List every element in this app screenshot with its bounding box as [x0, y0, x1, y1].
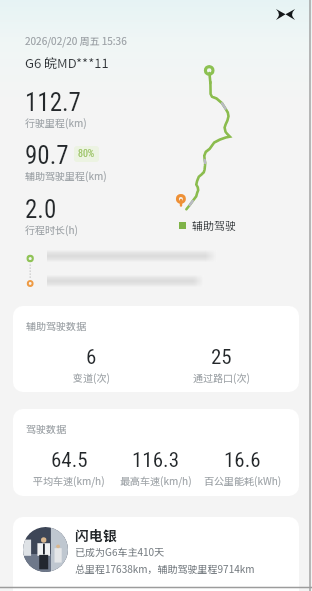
staticText: G6 皖MD***11	[25, 53, 109, 72]
staticText: 行程时长(h)	[25, 222, 78, 236]
staticText: 变道(次)	[73, 370, 110, 384]
staticText: 辅助驾驶	[192, 217, 236, 233]
button[interactable]: 辅助驾驶数据	[13, 306, 299, 392]
button[interactable]: 闪电银	[13, 517, 299, 591]
staticText: 112.7	[25, 88, 81, 117]
staticText: 行驶里程(km)	[25, 115, 87, 129]
staticText: 辅助驾驶里程(km)	[25, 168, 107, 182]
staticText: 已成为G6车主410天	[75, 544, 165, 558]
staticText: 2.0	[25, 195, 57, 224]
staticText: 驾驶数据	[26, 421, 66, 435]
staticText: 2026/02/20 周五 15:36	[25, 33, 127, 47]
staticText: 6	[86, 345, 97, 370]
staticText: 116.3	[132, 448, 180, 473]
staticText: 最高车速(km/h)	[120, 473, 192, 487]
staticText: 通过路口(次)	[193, 370, 250, 384]
staticText: 25	[211, 345, 232, 370]
staticText: 闪电银	[75, 525, 117, 545]
staticText: 平均车速(km/h)	[33, 473, 105, 487]
staticText: 80%	[78, 148, 95, 160]
staticText: 90.7	[25, 141, 69, 170]
staticText: 16.6	[224, 448, 261, 473]
button[interactable]: 驾驶数据	[13, 409, 299, 496]
button[interactable]: Close	[272, 0, 299, 27]
staticText: 百公里能耗(kWh)	[204, 473, 282, 487]
staticText: 总里程17638km，辅助驾驶里程9714km	[75, 561, 255, 575]
staticText: 64.5	[51, 448, 88, 473]
staticText: 辅助驾驶数据	[26, 318, 86, 332]
